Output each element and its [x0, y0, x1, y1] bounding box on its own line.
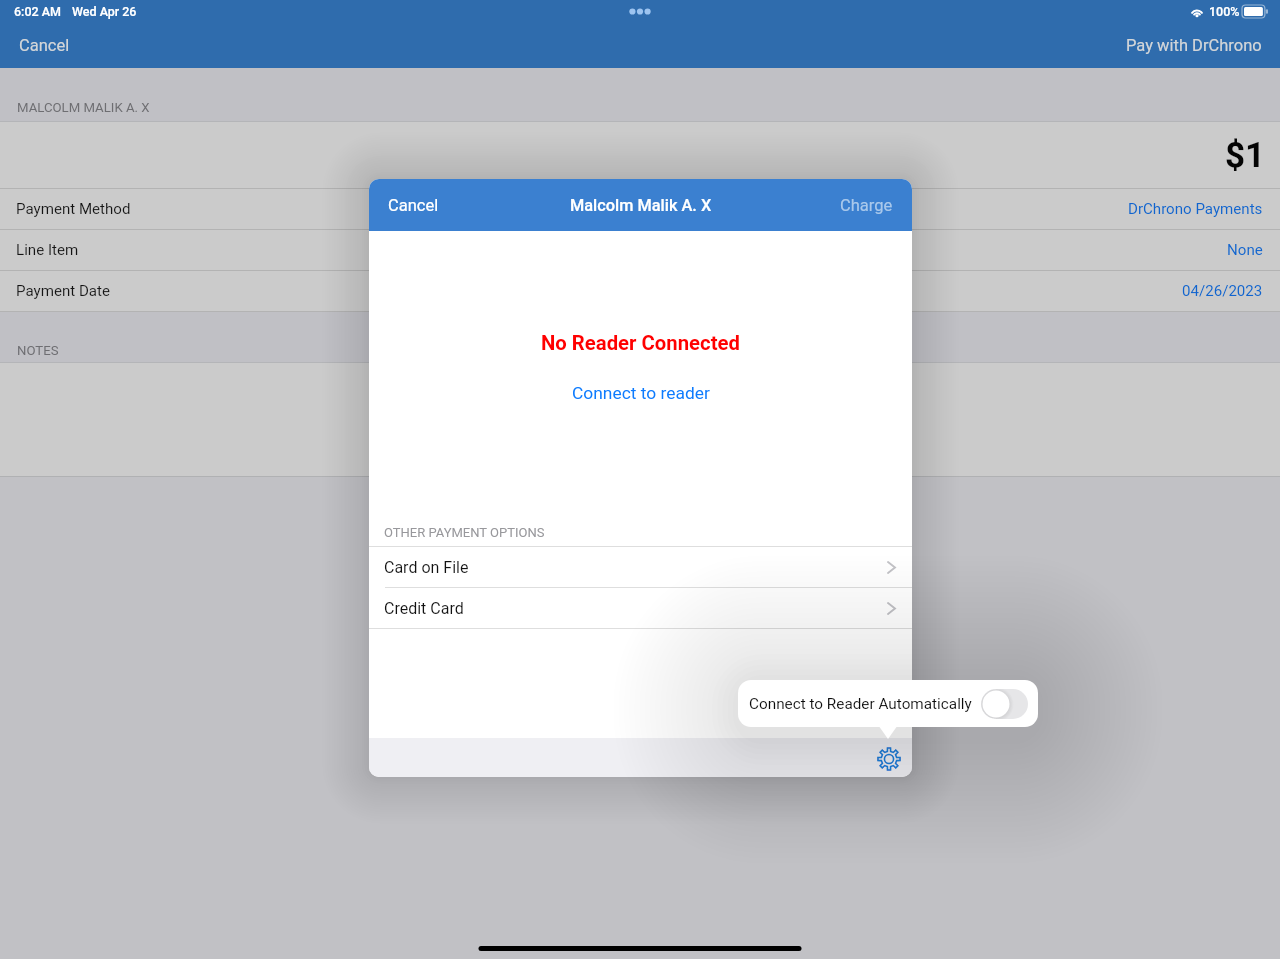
button[interactable]: Cancel: [369, 186, 458, 225]
staticText: Malcolm Malik A. X: [570, 196, 712, 215]
staticText: $1: [1225, 135, 1266, 176]
staticText: Charge: [840, 196, 893, 215]
button[interactable]: Line Item: [0, 230, 1280, 270]
button[interactable]: Charge: [821, 186, 912, 225]
staticText: Connect to Reader Automatically: [749, 695, 972, 713]
staticText: Cancel: [388, 196, 439, 215]
staticText: 6:02 AM: [14, 4, 62, 19]
staticText: DrChrono Payments: [1128, 200, 1263, 218]
button[interactable]: Card on File: [369, 547, 912, 587]
staticText: Cancel: [19, 36, 70, 55]
staticText: Connect to reader: [572, 383, 710, 403]
button[interactable]: Connect to reader: [564, 380, 718, 406]
staticText: Pay with DrChrono: [1126, 36, 1262, 55]
staticText: OTHER PAYMENT OPTIONS: [384, 525, 545, 540]
staticText: 04/26/2023: [1182, 282, 1263, 300]
button[interactable]: Cancel: [13, 28, 76, 63]
staticText: Wed Apr 26: [72, 4, 137, 19]
staticText: Payment Method: [16, 200, 131, 218]
button[interactable]: Settings: [870, 739, 908, 777]
staticText: Payment Date: [16, 282, 110, 300]
button[interactable]: Payment Date: [0, 271, 1280, 311]
staticText: Card on File: [384, 558, 469, 577]
staticText: None: [1227, 241, 1263, 259]
button[interactable]: Connect to Reader Automatically: [981, 689, 1028, 719]
button[interactable]: Credit Card: [369, 588, 912, 628]
staticText: MALCOLM MALIK A. X: [17, 100, 150, 115]
staticText: Credit Card: [384, 599, 464, 618]
staticText: No Reader Connected: [541, 331, 740, 355]
staticText: 100%: [1209, 4, 1240, 19]
button[interactable]: Pay with DrChrono: [1121, 28, 1267, 63]
staticText: Line Item: [16, 241, 79, 259]
staticText: NOTES: [17, 343, 59, 358]
button[interactable]: Payment Method: [0, 189, 1280, 229]
